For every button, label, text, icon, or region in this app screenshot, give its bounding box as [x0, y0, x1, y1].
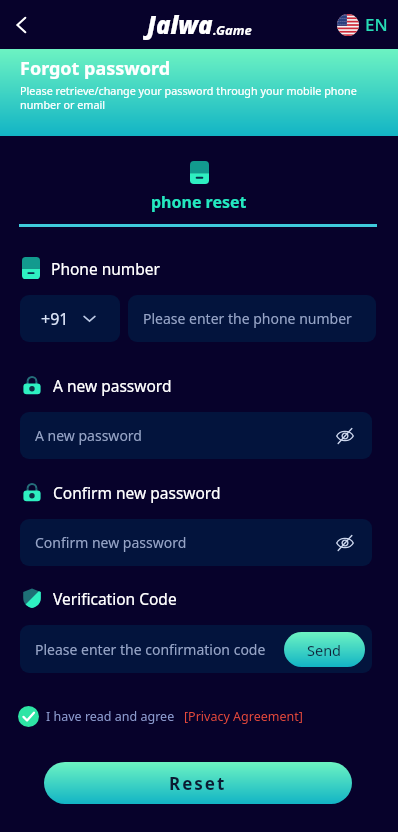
button[interactable]: EN [337, 13, 388, 36]
staticText: Verification Code [53, 588, 177, 609]
staticText: Phone number [51, 258, 161, 279]
button[interactable]: Send [284, 632, 365, 667]
staticText: Confirm new password [35, 533, 187, 552]
staticText: Confirm new password [53, 482, 221, 503]
staticText: A new password [35, 426, 142, 445]
staticText: Please retrieve/change your password thr… [20, 83, 382, 112]
staticText: .Game [213, 21, 252, 39]
staticText: +91 [41, 308, 69, 330]
button[interactable]: A new password [20, 412, 372, 459]
button[interactable]: Reset [44, 762, 352, 804]
button[interactable]: [Privacy Agreement] [184, 708, 303, 725]
staticText: phone reset [151, 191, 247, 213]
button[interactable]: Toggle password visibility [334, 532, 356, 554]
button[interactable]: Toggle password visibility [334, 425, 356, 447]
button[interactable]: Confirm new password [20, 519, 372, 566]
button[interactable]: Agree checkbox [18, 706, 39, 727]
staticText: Jalwa [147, 8, 213, 41]
button[interactable]: +91 [20, 295, 120, 342]
button[interactable]: Back [3, 7, 39, 43]
staticText: Please enter the confirmation code [35, 640, 266, 659]
staticText: Please enter the phone number [143, 309, 352, 328]
staticText: I have read and agree [46, 708, 175, 725]
staticText: EN [365, 13, 388, 36]
staticText: Send [307, 640, 342, 660]
staticText: Forgot password [20, 56, 171, 81]
staticText: A new password [53, 375, 172, 396]
button[interactable]: Please enter the phone number [128, 295, 376, 342]
staticText: Reset [169, 772, 227, 795]
